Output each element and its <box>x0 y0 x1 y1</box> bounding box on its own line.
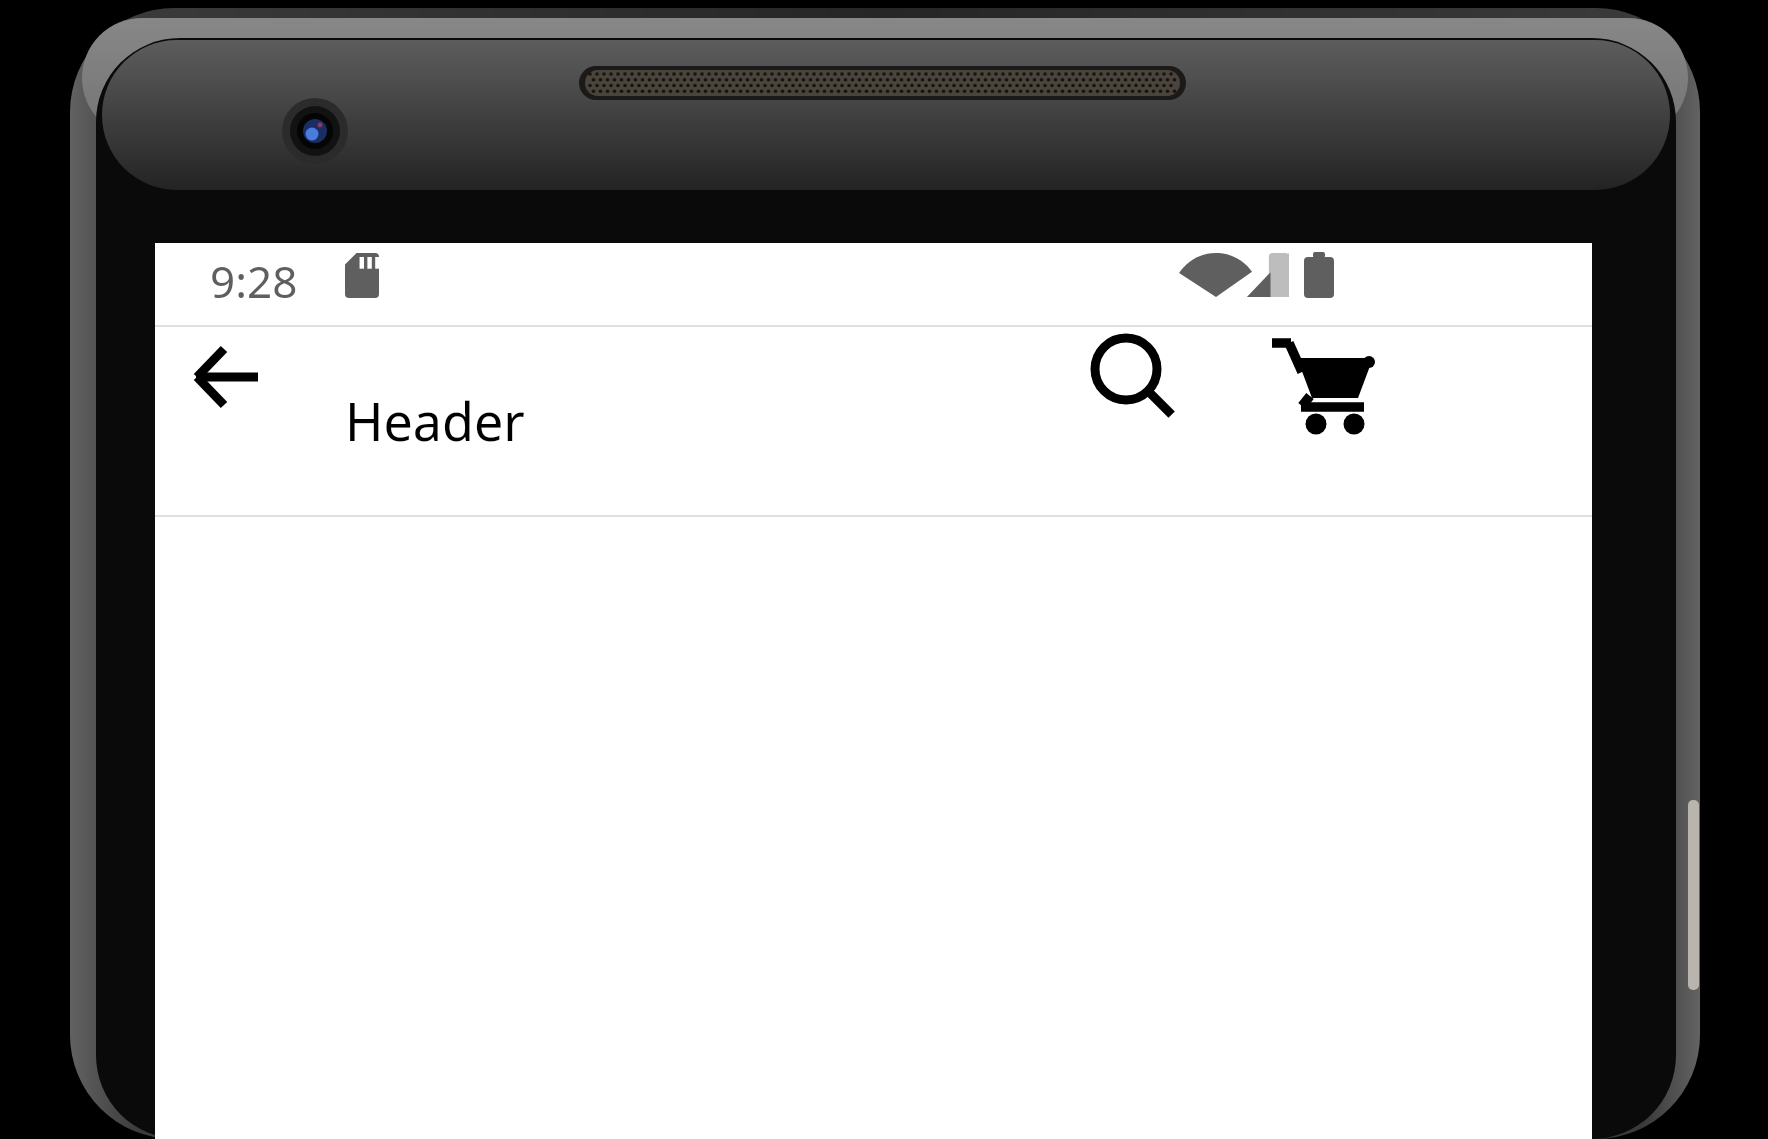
staticText: Header <box>345 385 525 456</box>
button[interactable]: Shopping cart <box>1253 313 1381 441</box>
button[interactable]: Search <box>1070 313 1198 441</box>
staticText: 9:28 <box>210 251 298 311</box>
button[interactable]: Back <box>161 313 289 441</box>
